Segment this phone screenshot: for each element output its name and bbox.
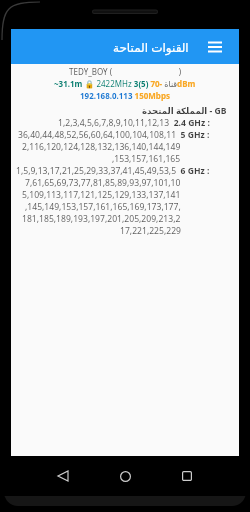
button[interactable]: Back <box>50 463 76 489</box>
staticText: القنوات المتاحة <box>113 39 189 55</box>
staticText: 36,40,44,48,52,56,60,64,100,104,108,11 5… <box>18 129 210 141</box>
staticText: المملكة المتحدة - GB <box>142 105 227 117</box>
staticText: 1,5,9,13,17,21,25,29,33,37,41,45,49,53,5… <box>16 165 210 177</box>
staticText: 181,185,189,193,197,201,205,209,213,2 <box>22 213 181 225</box>
button[interactable]: Recents <box>174 463 200 489</box>
staticText: ,153,157,161,165 <box>112 153 181 165</box>
staticText: 17,221,225,229 <box>120 225 181 237</box>
staticText: 7,61,65,69,73,77,81,85,89,93,97,101,10 <box>25 177 181 189</box>
staticText: 2,116,120,124,128,132,136,140,144,149 <box>22 141 181 153</box>
staticText: 192.168.0.113 150Mbps <box>80 90 170 101</box>
staticText: 5,109,113,117,121,125,129,133,137,141 <box>22 189 181 201</box>
button[interactable]: Home <box>112 463 138 489</box>
button[interactable]: Menu <box>201 33 229 61</box>
staticText: 1,2,3,4,5,6,7,8,9,10,11,12,13 2.4 GHz : <box>58 117 210 129</box>
staticText: TEDY_BOY ( ) <box>69 66 182 77</box>
staticText: ~31.1m 🔒 2422MHz 3(5) قناة -70dBm <box>54 78 196 89</box>
staticText: ,145,149,153,157,161,165,169,173,177, <box>25 201 181 213</box>
